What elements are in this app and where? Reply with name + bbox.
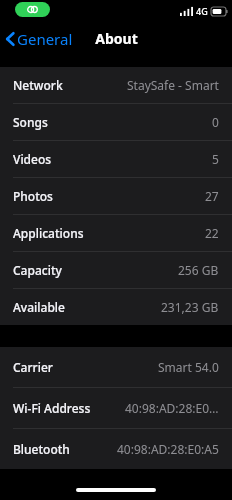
staticText: 4G (196, 5, 208, 17)
staticText: 40:98:AD:28:E0:A5 (117, 441, 219, 457)
staticText: Wi-Fi Address (13, 400, 91, 416)
button[interactable]: Applications (0, 215, 232, 251)
button[interactable]: Capacity (0, 252, 232, 288)
staticText: 0 (212, 114, 219, 130)
button[interactable]: Screen sharing active (15, 2, 50, 17)
button[interactable]: Network (0, 67, 232, 103)
staticText: Smart 54.0 (158, 359, 219, 375)
staticText: 27 (205, 188, 219, 204)
button[interactable]: Wi-Fi Address (0, 388, 232, 428)
staticText: Available (13, 299, 65, 315)
staticText: StaySafe - Smart (127, 77, 219, 93)
staticText: Songs (13, 114, 48, 130)
staticText: Capacity (13, 262, 62, 278)
button[interactable]: Available (0, 289, 232, 325)
staticText: 231,23 GB (161, 299, 219, 315)
staticText: Bluetooth (13, 441, 70, 457)
button[interactable]: Bluetooth (0, 429, 232, 469)
staticText: Network (13, 77, 63, 93)
button[interactable]: Photos (0, 178, 232, 214)
staticText: 256 GB (178, 262, 219, 278)
button[interactable]: Videos (0, 141, 232, 177)
staticText: About (95, 29, 138, 48)
staticText: 5 (212, 151, 219, 167)
button[interactable]: Carrier (0, 347, 232, 387)
staticText: Applications (13, 225, 84, 241)
staticText: General (17, 29, 73, 49)
staticText: Carrier (13, 359, 53, 375)
staticText: Photos (13, 188, 53, 204)
staticText: 22 (205, 225, 219, 241)
button[interactable]: Songs (0, 104, 232, 140)
staticText: Videos (13, 151, 52, 167)
button[interactable]: General (0, 25, 79, 53)
staticText: 40:98:AD:28:E0… (125, 400, 219, 416)
